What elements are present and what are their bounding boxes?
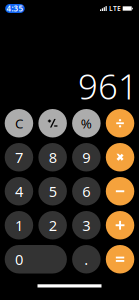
staticText: 2 xyxy=(49,215,57,235)
button[interactable]: Plus minus xyxy=(38,109,67,137)
staticText: 961 xyxy=(78,63,138,109)
staticText: 6 xyxy=(82,181,90,201)
button[interactable]: 2 xyxy=(38,211,67,239)
button[interactable]: Plus xyxy=(106,211,134,239)
staticText: 5 xyxy=(49,181,57,201)
staticText: 8 xyxy=(49,147,57,167)
button[interactable]: 5 xyxy=(38,177,67,205)
button[interactable]: Equals xyxy=(106,245,134,273)
staticText: 3 xyxy=(82,215,90,235)
button[interactable]: 7 xyxy=(5,143,33,171)
staticText: C xyxy=(15,114,23,132)
button[interactable]: 8 xyxy=(38,143,67,171)
staticText: 7 xyxy=(15,147,23,167)
staticText: % xyxy=(81,114,92,132)
button[interactable]: Minus xyxy=(106,177,134,205)
staticText: 4:35 xyxy=(6,3,23,14)
button[interactable]: 1 xyxy=(5,211,33,239)
staticText: 9 xyxy=(82,147,90,167)
button[interactable]: 0 xyxy=(5,245,67,273)
button[interactable]: 9 xyxy=(72,143,101,171)
staticText: 4 xyxy=(15,181,23,201)
button[interactable]: C xyxy=(5,109,33,137)
staticText: LTE xyxy=(109,4,121,13)
button[interactable]: . xyxy=(72,245,101,273)
button[interactable]: Multiply xyxy=(106,143,134,171)
staticText: . xyxy=(84,249,88,269)
button[interactable]: 3 xyxy=(72,211,101,239)
button[interactable]: Divide xyxy=(106,109,134,137)
button[interactable]: 4 xyxy=(5,177,33,205)
staticText: 1 xyxy=(15,215,23,235)
button[interactable]: % xyxy=(72,109,101,137)
button[interactable]: 6 xyxy=(72,177,101,205)
staticText: 0 xyxy=(15,249,23,269)
